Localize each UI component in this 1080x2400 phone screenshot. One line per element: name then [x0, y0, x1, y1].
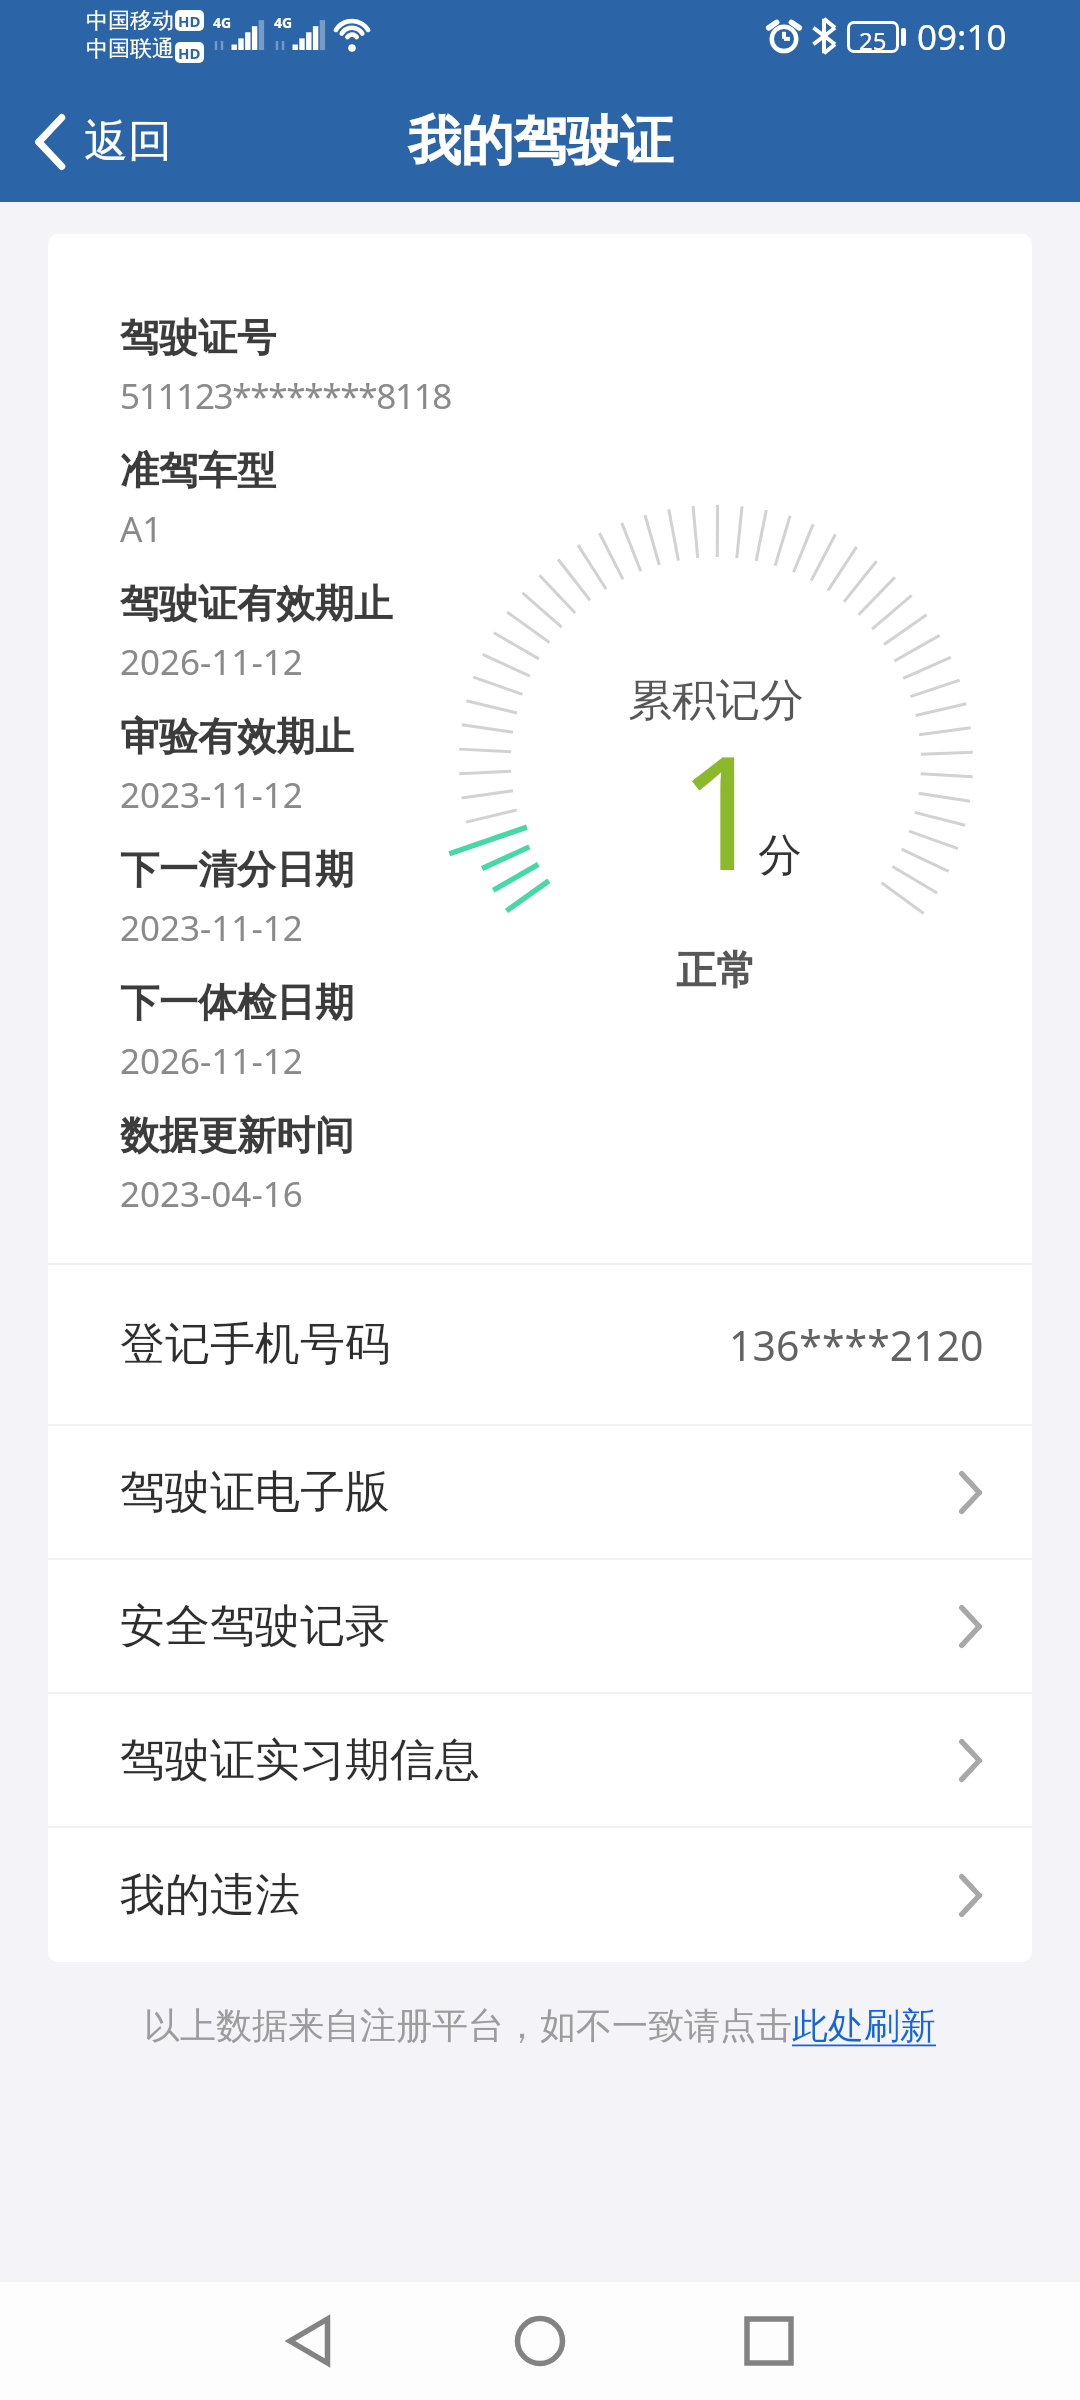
staticText: 2023-04-16	[120, 1170, 303, 1218]
button[interactable]: Recent apps	[684, 2286, 854, 2396]
staticText: 我的违法	[120, 1867, 300, 1924]
staticText: 中国移动	[86, 7, 174, 35]
staticText: 下一清分日期	[120, 845, 354, 894]
staticText: 2026-11-12	[120, 1037, 303, 1085]
staticText: 审验有效期止	[120, 712, 354, 761]
staticText: 返回	[84, 114, 172, 169]
button[interactable]: 驾驶证实习期信息	[48, 1694, 1032, 1826]
staticText: 4G	[213, 13, 232, 32]
button[interactable]: 驾驶证电子版	[48, 1426, 1032, 1558]
staticText: 数据更新时间	[120, 1111, 354, 1160]
staticText: 驾驶证实习期信息	[120, 1732, 480, 1789]
staticText: 09:10	[917, 13, 1007, 61]
staticText: 累积记分	[416, 673, 1016, 728]
button[interactable]: Home	[455, 2286, 625, 2396]
staticText: 安全驾驶记录	[120, 1598, 390, 1655]
staticText: 我的驾驶证	[408, 108, 673, 175]
button[interactable]: 此处刷新	[792, 2003, 936, 2048]
staticText: 准驾车型	[120, 446, 276, 495]
staticText: 驾驶证电子版	[120, 1464, 390, 1521]
button[interactable]: 返回	[0, 98, 196, 185]
staticText: 2026-11-12	[120, 638, 303, 686]
staticText: 4G	[274, 13, 293, 32]
staticText: 2023-11-12	[120, 904, 303, 952]
staticText: HD	[178, 11, 201, 31]
button[interactable]: 安全驾驶记录	[48, 1560, 1032, 1692]
staticText: 中国联通	[86, 35, 174, 63]
staticText: 分	[758, 828, 802, 883]
button[interactable]: Back	[226, 2286, 396, 2396]
staticText: 驾驶证有效期止	[120, 579, 393, 628]
staticText: 511123********8118	[120, 372, 452, 420]
staticText: 以上数据来自注册平台，如不一致请点击	[144, 2003, 792, 2048]
staticText: 1	[678, 701, 769, 916]
staticText: 下一体检日期	[120, 978, 354, 1027]
staticText: 25	[859, 24, 887, 50]
staticText: 136****2120	[729, 1317, 984, 1373]
staticText: 登记手机号码	[120, 1316, 390, 1373]
button[interactable]: 登记手机号码	[48, 1265, 1032, 1424]
staticText: 2023-11-12	[120, 771, 303, 819]
staticText: 驾驶证号	[120, 313, 276, 362]
staticText: HD	[178, 43, 201, 63]
staticText: A1	[120, 505, 163, 553]
staticText: 正常	[416, 945, 1016, 995]
button[interactable]: 我的违法	[48, 1828, 1032, 1962]
